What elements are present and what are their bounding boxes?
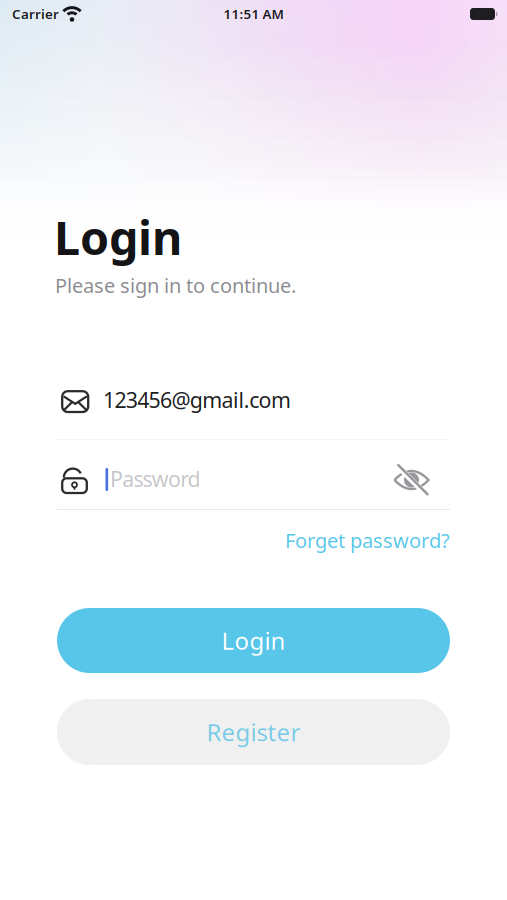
button[interactable]: Forget password?: [285, 527, 450, 554]
button[interactable]: Show password: [393, 463, 430, 496]
button[interactable]: 123456@gmail.com: [57, 385, 450, 437]
button[interactable]: Password: [57, 460, 387, 512]
button[interactable]: Register: [57, 699, 450, 765]
staticText: Please sign in to continue.: [55, 272, 296, 299]
staticText: 11:51 AM: [223, 5, 283, 23]
staticText: 123456@gmail.com: [103, 386, 291, 414]
staticText: Login: [54, 206, 182, 268]
staticText: Forget password?: [285, 527, 450, 554]
staticText: Login: [221, 625, 285, 656]
button[interactable]: Login: [57, 608, 450, 673]
staticText: Password: [110, 465, 200, 493]
staticText: Register: [206, 716, 300, 748]
staticText: Carrier: [12, 5, 59, 23]
